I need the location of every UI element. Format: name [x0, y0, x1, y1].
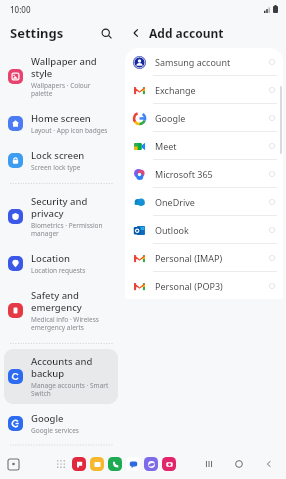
button[interactable]: Camera: [162, 457, 176, 471]
button[interactable]: Lock screen: [4, 143, 118, 178]
button[interactable]: Recents: [202, 457, 216, 471]
button[interactable]: Back: [262, 457, 276, 471]
button[interactable]: Back: [126, 23, 146, 43]
staticText: Personal (POP3): [155, 280, 269, 292]
staticText: Location: [31, 252, 70, 265]
staticText: Personal (IMAP): [155, 252, 269, 264]
staticText: Security and privacy: [31, 195, 113, 220]
staticText: OneDrive: [155, 196, 269, 208]
staticText: Microsoft 365: [155, 168, 269, 180]
staticText: Samsung account: [155, 56, 269, 68]
staticText: Wallpaper and style: [31, 55, 113, 80]
staticText: 10:00: [10, 4, 31, 15]
staticText: Biometrics · Permission manager: [31, 221, 113, 238]
button[interactable]: Wallpaper and style: [4, 49, 118, 104]
button[interactable]: Microsoft 365: [125, 160, 283, 187]
staticText: Wallpapers · Colour palette: [31, 81, 113, 98]
staticText: Meet: [155, 140, 269, 152]
staticText: Google: [155, 112, 269, 124]
button[interactable]: Notes: [6, 457, 20, 471]
button[interactable]: Samsung account: [125, 48, 283, 75]
button[interactable]: Apps: [54, 457, 68, 471]
button[interactable]: OneDrive: [125, 188, 283, 215]
button[interactable]: Home: [232, 457, 246, 471]
staticText: Layout · App icon badges: [31, 126, 108, 135]
button[interactable]: Exchange: [125, 76, 283, 103]
staticText: Outlook: [155, 224, 269, 236]
button[interactable]: Google: [125, 104, 283, 131]
button[interactable]: Gallery: [90, 457, 104, 471]
staticText: Medical info · Wireless emergency alerts: [31, 315, 113, 332]
button[interactable]: Meet: [125, 132, 283, 159]
staticText: Manage accounts · Smart Switch: [31, 381, 113, 398]
staticText: Add account: [149, 25, 224, 41]
staticText: Exchange: [155, 84, 269, 96]
staticText: Google: [31, 412, 64, 425]
button[interactable]: Messages: [126, 457, 140, 471]
staticText: Accounts and backup: [31, 355, 113, 380]
button[interactable]: Location: [4, 246, 118, 281]
button[interactable]: Outlook: [125, 216, 283, 243]
button[interactable]: Security and privacy: [4, 189, 118, 244]
button[interactable]: Personal (IMAP): [125, 244, 283, 271]
button[interactable]: Personal (POP3): [125, 272, 283, 299]
button[interactable]: Home screen: [4, 106, 118, 141]
button[interactable]: Accounts and backup: [4, 349, 118, 404]
button[interactable]: Files: [72, 457, 86, 471]
button[interactable]: Google: [4, 406, 118, 441]
staticText: Google services: [31, 426, 79, 435]
button[interactable]: Safety and emergency: [4, 283, 118, 338]
button[interactable]: Internet: [144, 457, 158, 471]
staticText: Screen lock type: [31, 163, 81, 172]
button[interactable]: Phone: [108, 457, 122, 471]
staticText: Home screen: [31, 112, 91, 125]
staticText: Safety and emergency: [31, 289, 113, 314]
staticText: Location requests: [31, 266, 86, 275]
staticText: Settings: [10, 24, 64, 42]
staticText: Lock screen: [31, 149, 85, 162]
button[interactable]: Search: [96, 23, 116, 43]
